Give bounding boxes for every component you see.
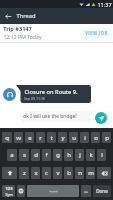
- button[interactable]: o: [91, 132, 100, 143]
- staticText: Done: [96, 188, 108, 194]
- button[interactable]: a: [7, 149, 17, 161]
- button[interactable]: u: [69, 132, 78, 143]
- staticText: k: [89, 151, 93, 159]
- staticText: b: [67, 169, 71, 177]
- button[interactable]: z: [19, 167, 29, 179]
- staticText: VIEW JOB: [85, 30, 108, 36]
- button[interactable]: r: [36, 132, 45, 143]
- staticText: q: [5, 134, 9, 142]
- staticText: Sym: [5, 192, 13, 197]
- staticText: u: [72, 134, 76, 142]
- button[interactable]: w: [14, 132, 23, 143]
- button[interactable]: g: [53, 149, 62, 161]
- staticText: Sep 09,11:36: [24, 96, 45, 101]
- button[interactable]: Closure on Route 9.: [16, 85, 91, 103]
- button[interactable]: Settings: [17, 185, 25, 197]
- button[interactable]: VIEW JOB: [83, 28, 110, 38]
- button[interactable]: k: [86, 149, 95, 161]
- staticText: h: [67, 151, 71, 159]
- button[interactable]: n: [75, 167, 84, 179]
- button[interactable]: s: [19, 149, 29, 161]
- staticText: z: [23, 169, 26, 177]
- staticText: 123: [5, 186, 13, 192]
- staticText: o: [94, 134, 98, 142]
- button[interactable]: b: [64, 167, 73, 179]
- button[interactable]: Done: [93, 185, 111, 197]
- staticText: e: [28, 134, 32, 142]
- staticText: c: [45, 169, 48, 177]
- staticText: Closure on Route 9.: [24, 88, 78, 96]
- staticText: n: [78, 169, 82, 177]
- staticText: Trip #3147: [3, 25, 32, 33]
- button[interactable]: f: [42, 149, 51, 161]
- button[interactable]: Shift: [2, 167, 17, 179]
- button[interactable]: Period: [81, 185, 91, 197]
- staticText: 11:37: [97, 1, 112, 8]
- button[interactable]: v: [53, 167, 62, 179]
- button[interactable]: 123: [2, 185, 15, 197]
- staticText: j: [79, 151, 81, 159]
- staticText: t: [50, 134, 53, 142]
- button[interactable]: m: [86, 167, 95, 179]
- staticText: s: [23, 151, 26, 159]
- staticText: 12:12 PM Today: [3, 33, 42, 40]
- button[interactable]: e: [25, 132, 34, 143]
- button[interactable]: ok I will use the bridge!: [21, 111, 95, 122]
- button[interactable]: l: [97, 149, 106, 161]
- staticText: Thread: [16, 12, 36, 20]
- button[interactable]: h: [64, 149, 73, 161]
- staticText: i: [84, 134, 86, 142]
- staticText: m: [88, 169, 94, 177]
- button[interactable]: Space: [27, 185, 79, 197]
- staticText: ok I will use the bridge!: [23, 113, 77, 120]
- button[interactable]: d: [31, 149, 40, 161]
- staticText: l: [101, 151, 103, 159]
- staticText: f: [45, 151, 48, 159]
- button[interactable]: x: [31, 167, 40, 179]
- staticText: d: [34, 151, 38, 159]
- staticText: r: [39, 134, 42, 142]
- staticText: p: [105, 134, 109, 142]
- button[interactable]: q: [2, 132, 12, 143]
- staticText: a: [10, 151, 14, 159]
- button[interactable]: p: [102, 132, 111, 143]
- button[interactable]: y: [58, 132, 67, 143]
- staticText: g: [56, 151, 60, 159]
- staticText: y: [61, 134, 65, 142]
- staticText: w: [16, 134, 21, 142]
- staticText: v: [56, 169, 60, 177]
- button[interactable]: j: [75, 149, 84, 161]
- button[interactable]: Back: [0, 8, 16, 24]
- button[interactable]: t: [47, 132, 56, 143]
- button[interactable]: i: [80, 132, 89, 143]
- button[interactable]: Backspace: [97, 167, 111, 179]
- button[interactable]: c: [42, 167, 51, 179]
- staticText: x: [34, 169, 38, 177]
